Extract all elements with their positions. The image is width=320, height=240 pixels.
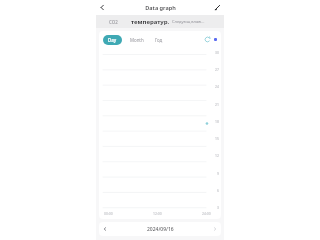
staticText: 15 <box>215 136 219 141</box>
staticText: 12 <box>215 153 219 158</box>
staticText: Следующ влаж… <box>172 19 205 24</box>
button[interactable]: Previous day <box>99 223 111 235</box>
staticText: 27 <box>215 67 219 72</box>
staticText: 24:00 <box>202 211 211 216</box>
button[interactable]: Следующ влаж… <box>172 19 224 24</box>
staticText: Month <box>130 37 144 43</box>
staticText: 18 <box>215 119 219 124</box>
staticText: Data graph <box>145 4 176 12</box>
button[interactable]: CO2 <box>107 17 120 27</box>
staticText: 00:00 <box>104 211 113 216</box>
staticText: 9 <box>217 171 219 176</box>
staticText: CO2 <box>109 19 118 25</box>
button[interactable]: Edit <box>211 1 224 14</box>
staticText: Год <box>155 37 163 43</box>
button[interactable]: Month <box>127 35 147 45</box>
button[interactable]: Refresh <box>202 34 213 45</box>
button[interactable]: Day <box>103 35 122 45</box>
button[interactable]: Год <box>152 35 166 45</box>
staticText: 21 <box>215 102 219 107</box>
staticText: 24 <box>215 84 219 89</box>
button[interactable]: Back <box>96 1 109 14</box>
staticText: 6 <box>217 188 219 193</box>
staticText: 3 <box>217 205 219 210</box>
staticText: 30 <box>215 50 219 55</box>
button[interactable]: Next day <box>209 223 221 235</box>
staticText: 12:00 <box>153 211 162 216</box>
staticText: Day <box>108 37 117 43</box>
button[interactable]: 2024/09/16 <box>147 226 174 233</box>
staticText: температур. <box>131 18 170 26</box>
button[interactable]: температур. <box>130 16 171 28</box>
